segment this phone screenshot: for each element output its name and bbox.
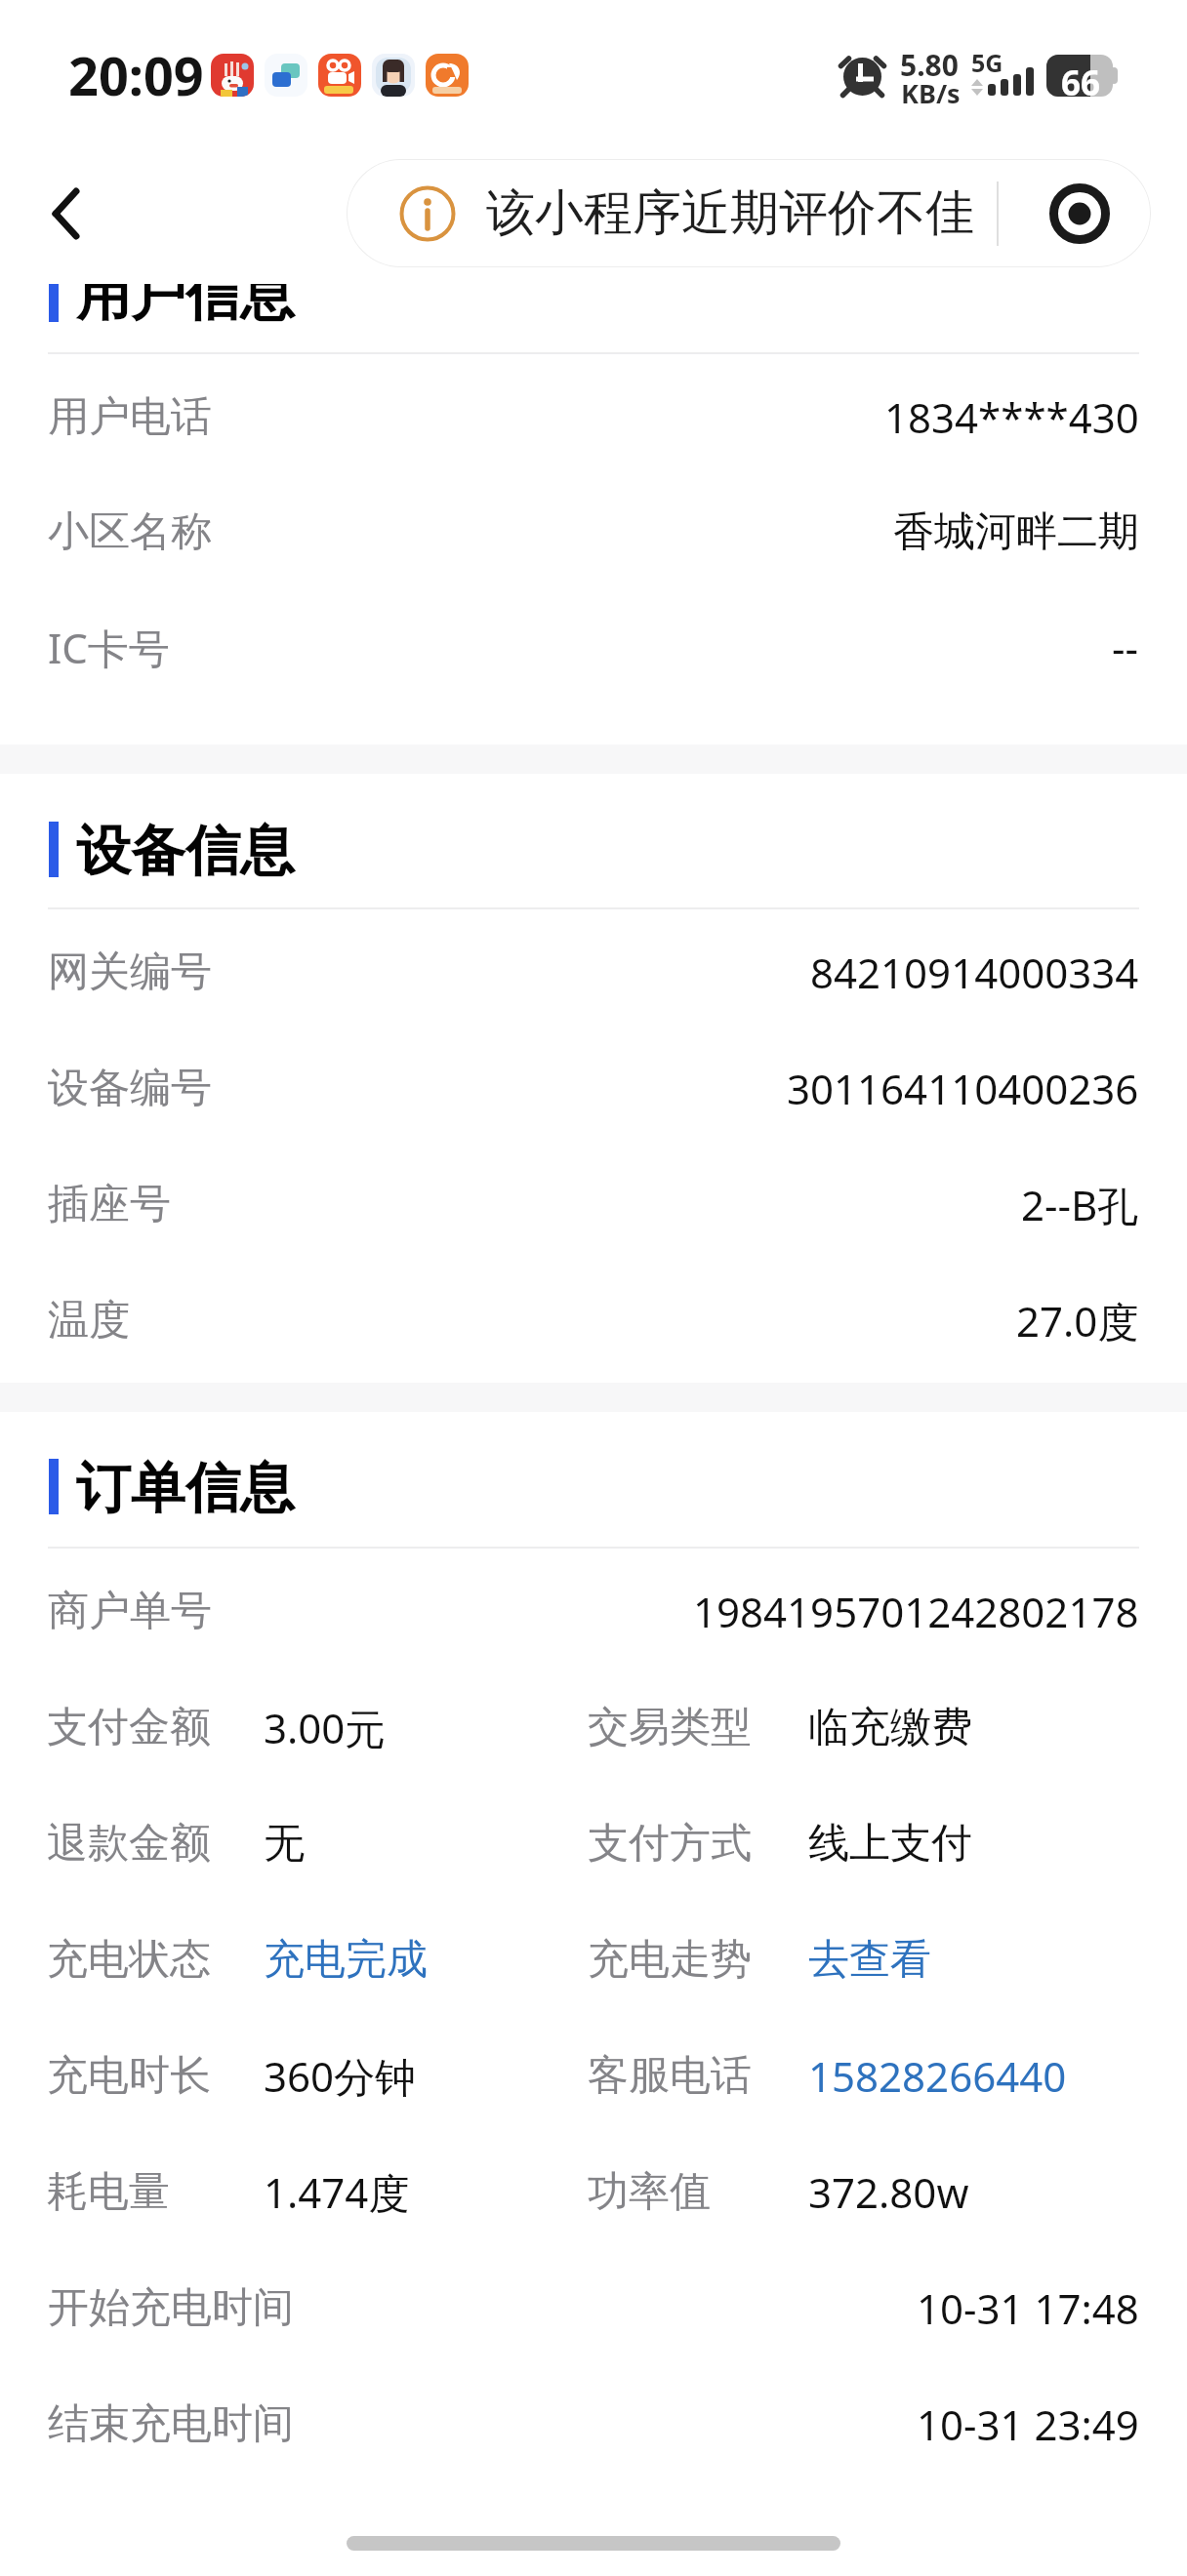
staticText: 301164110400236 [787,1061,1139,1116]
staticText: IC卡号 [48,620,170,675]
staticText: 客服电话 [588,2050,752,2102]
staticText: 充电状态 [47,1934,211,1986]
staticText: 360分钟 [264,2048,417,2104]
staticText: KB/s [901,75,961,111]
staticText: 线上支付 [808,1818,972,1870]
staticText: 84210914000334 [810,945,1139,1000]
staticText: 去查看 [808,1934,931,1986]
button[interactable]: 商户单号 [0,1553,1187,1670]
staticText: 插座号 [48,1179,171,1230]
staticText: 充电完成 [264,1934,428,1986]
staticText: 用户电话 [48,391,212,443]
staticText: 交易类型 [588,1702,752,1753]
button[interactable]: 充电时长 [0,2018,1187,2134]
staticText: 香城河畔二期 [893,506,1139,558]
button[interactable]: 温度 [0,1263,1187,1379]
button[interactable]: 网关编号 [0,914,1187,1030]
staticText: 5G [971,46,1003,79]
staticText: 10-31 17:48 [917,2280,1139,2336]
staticText: 开始充电时间 [48,2282,294,2334]
staticText: 用户信息 [76,262,295,331]
staticText: 网关编号 [48,946,212,998]
button[interactable]: Back [20,169,109,259]
button[interactable]: 退款金额 [0,1786,1187,1902]
staticText: 无 [264,1818,305,1870]
staticText: 功率值 [588,2166,711,2218]
staticText: 充电走势 [588,1934,752,1986]
staticText: -- [1112,620,1139,675]
button[interactable]: 充电状态 [0,1902,1187,2018]
staticText: 5.80 [900,45,959,85]
staticText: 订单信息 [76,1454,295,1523]
staticText: 1834****430 [884,389,1139,445]
staticText: 退款金额 [47,1818,211,1870]
staticText: 3.00元 [264,1700,387,1755]
staticText: 该小程序近期评价不佳 [486,182,974,244]
staticText: 27.0度 [1016,1293,1139,1348]
button[interactable]: 开始充电时间 [0,2250,1187,2366]
button[interactable]: 设备编号 [0,1030,1187,1147]
staticText: 商户单号 [48,1586,212,1637]
button[interactable]: 结束充电时间 [0,2366,1187,2482]
button[interactable]: 支付金额 [0,1670,1187,1786]
staticText: 温度 [48,1295,130,1347]
staticText: 结束充电时间 [48,2398,294,2450]
button[interactable]: 插座号 [0,1147,1187,1263]
staticText: 临充缴费 [808,1702,972,1753]
staticText: 支付方式 [588,1818,752,1870]
staticText: 充电时长 [47,2050,211,2102]
staticText: 66 [1061,60,1101,101]
staticText: 耗电量 [47,2166,170,2218]
staticText: 2--B孔 [1021,1177,1139,1232]
staticText: 1984195701242802178 [693,1584,1139,1639]
button[interactable]: IC卡号 [0,589,1187,705]
button[interactable]: 小区名称 [0,474,1187,590]
staticText: 15828266440 [808,2048,1067,2104]
staticText: 支付金额 [47,1702,211,1753]
staticText: 10-31 23:49 [917,2396,1139,2452]
button[interactable]: 该小程序近期评价不佳 [347,159,997,267]
staticText: 1.474度 [264,2164,410,2220]
staticText: 设备编号 [48,1063,212,1114]
staticText: 20:09 [68,39,204,111]
button[interactable]: 用户电话 [0,359,1187,475]
staticText: 设备信息 [76,817,295,886]
button[interactable]: 耗电量 [0,2134,1187,2250]
staticText: 小区名称 [48,506,212,558]
button[interactable]: Mini program menu [1041,175,1119,253]
staticText: 372.80w [808,2164,969,2220]
